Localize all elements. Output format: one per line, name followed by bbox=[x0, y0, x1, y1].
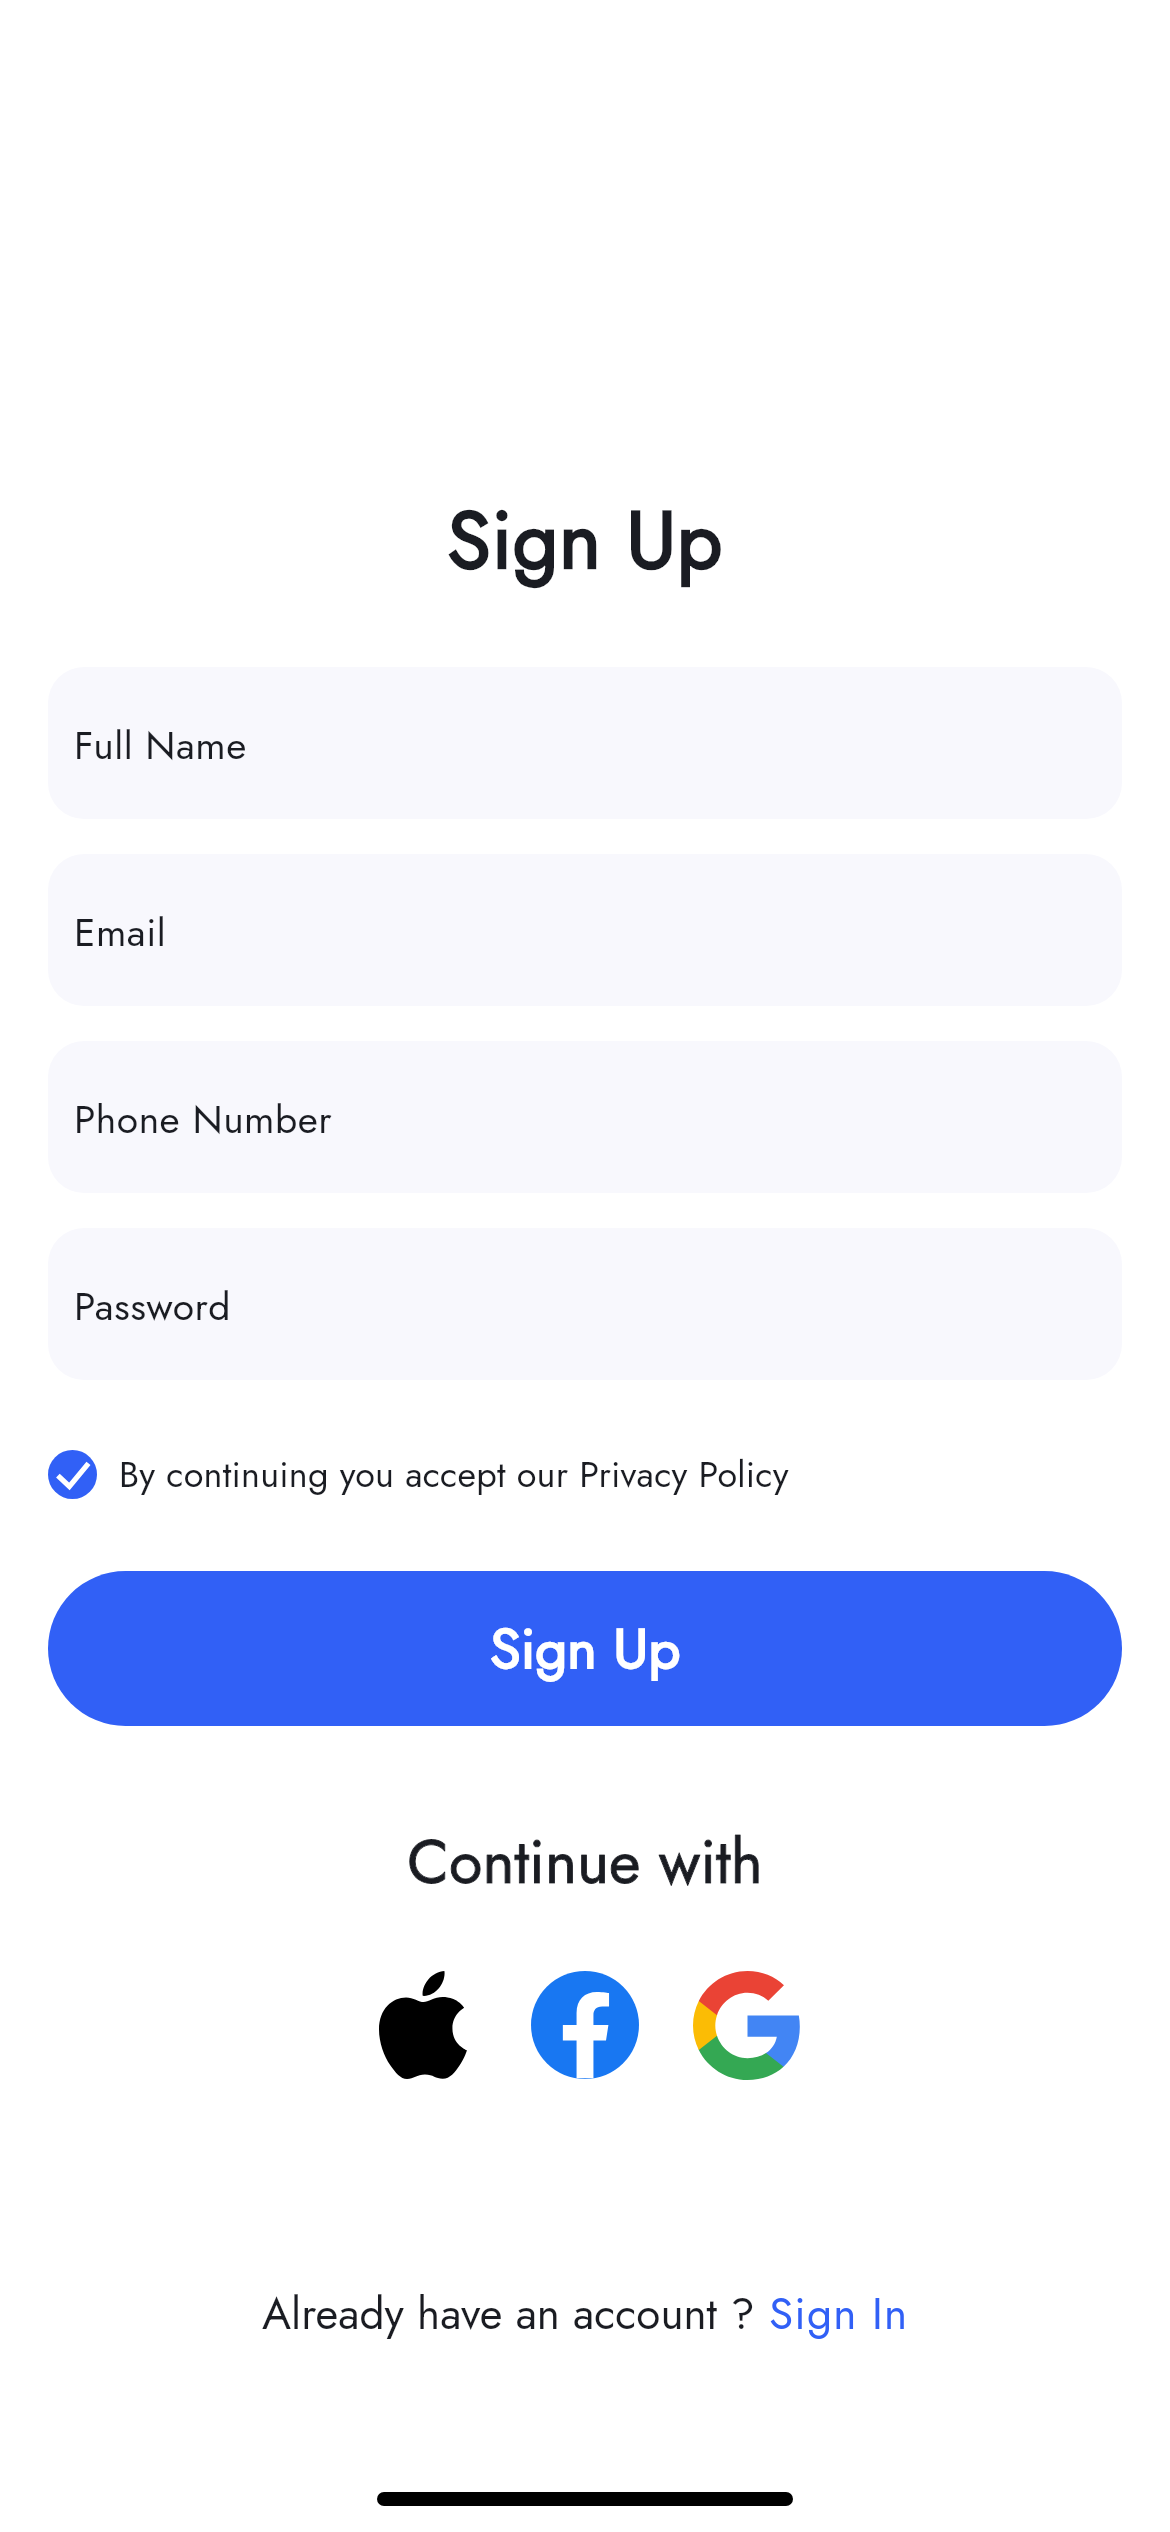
staticText: Continue with bbox=[0, 1818, 1170, 1906]
staticText: Email bbox=[74, 904, 167, 960]
button[interactable]: Continue with Facebook bbox=[524, 1955, 646, 2095]
staticText: Sign In bbox=[769, 2282, 909, 2346]
button[interactable]: Sign Up bbox=[48, 1571, 1122, 1726]
staticText: Continue with bbox=[0, 1818, 1170, 1906]
staticText: Full Name bbox=[74, 717, 247, 773]
staticText: Phone Number bbox=[74, 1091, 333, 1147]
button[interactable]: Phone Number bbox=[48, 1041, 1122, 1193]
staticText: By continuing you accept our Privacy Pol… bbox=[119, 1448, 789, 1500]
button[interactable]: Email bbox=[48, 854, 1122, 1006]
button[interactable]: Continue with Google bbox=[686, 1955, 808, 2095]
button[interactable]: Full Name bbox=[48, 667, 1122, 819]
staticText: Already have an account ? bbox=[262, 2282, 769, 2346]
staticText: Password bbox=[74, 1278, 232, 1334]
button[interactable]: Sign In bbox=[769, 2282, 909, 2346]
button[interactable]: By continuing you accept our Privacy Pol… bbox=[48, 1440, 789, 1508]
staticText: Sign Up bbox=[0, 482, 1170, 598]
button[interactable]: Continue with Apple bbox=[362, 1955, 484, 2095]
button[interactable]: Password bbox=[48, 1228, 1122, 1380]
staticText: Sign Up bbox=[490, 1608, 681, 1689]
